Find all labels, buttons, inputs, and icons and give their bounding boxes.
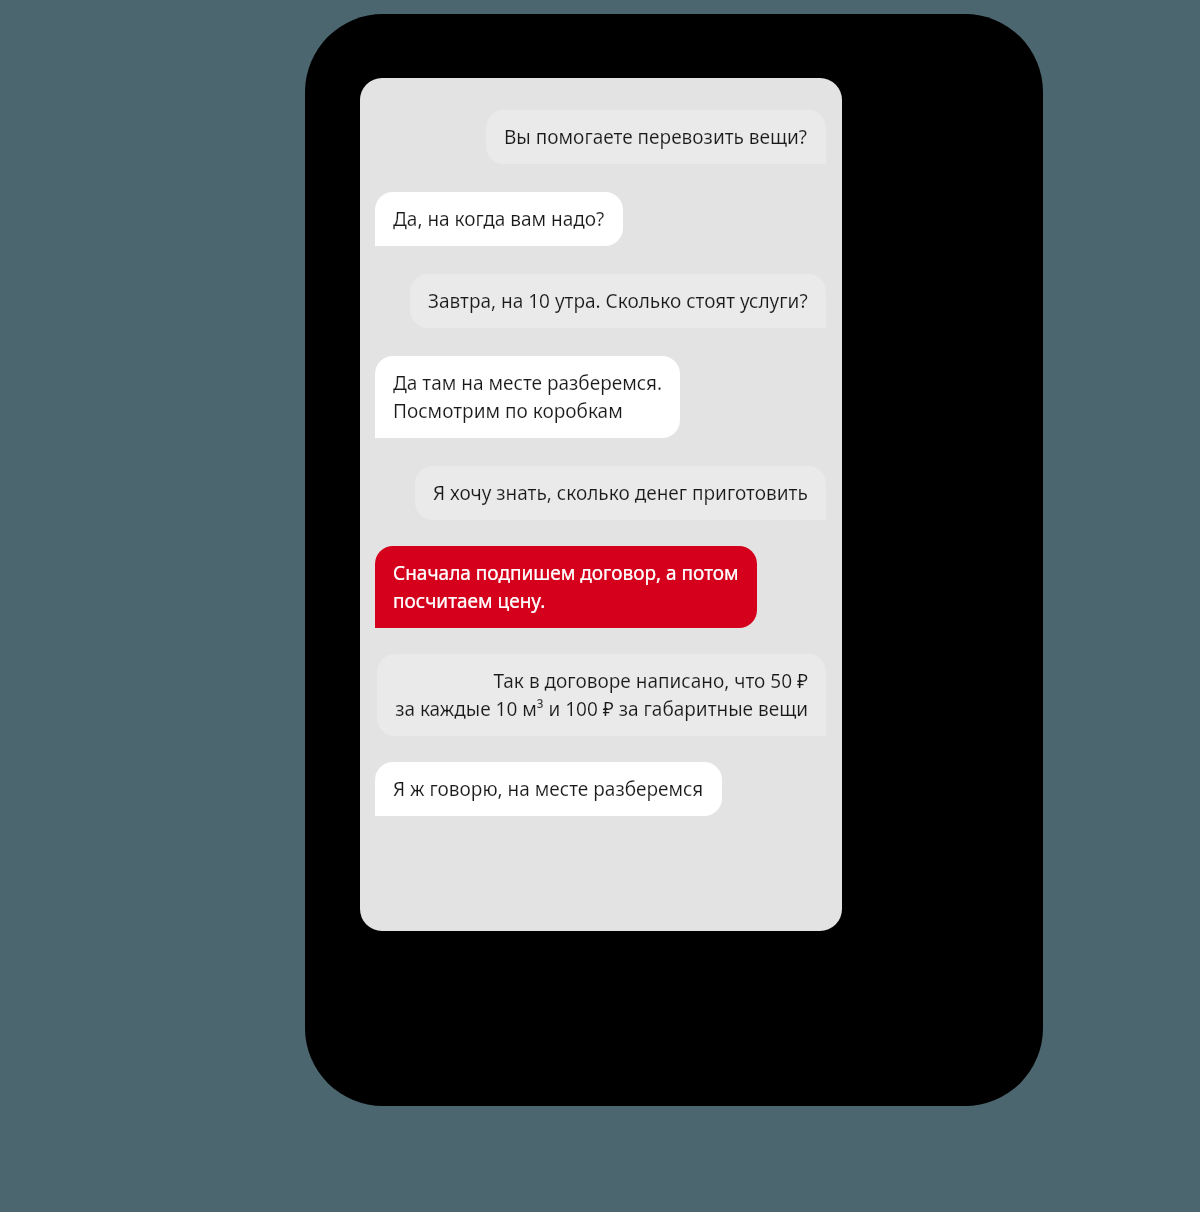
staticText: Да там на месте разберемся. Посмотрим по…	[393, 370, 662, 424]
button[interactable]: Да, на когда вам надо?	[375, 192, 623, 246]
button[interactable]: Сначала подпишем договор, а потом посчит…	[375, 546, 757, 628]
button[interactable]: Вы помогаете перевозить вещи?	[486, 110, 826, 164]
staticText: Сначала подпишем договор, а потом посчит…	[393, 560, 739, 614]
staticText: Я хочу знать, сколько денег приготовить	[433, 480, 808, 506]
button[interactable]: Так в договоре написано, что 50 ₽ за каж…	[377, 654, 826, 736]
button[interactable]: Я ж говорю, на месте разберемся	[375, 762, 722, 816]
staticText: Я ж говорю, на месте разберемся	[393, 776, 704, 802]
staticText: Завтра, на 10 утра. Сколько стоят услуги…	[428, 288, 808, 314]
button[interactable]: Да там на месте разберемся. Посмотрим по…	[375, 356, 680, 438]
staticText: Вы помогаете перевозить вещи?	[504, 124, 808, 150]
staticText: Да, на когда вам надо?	[393, 206, 605, 232]
staticText: Так в договоре написано, что 50 ₽ за каж…	[395, 668, 808, 722]
button[interactable]: Я хочу знать, сколько денег приготовить	[415, 466, 826, 520]
button[interactable]: Завтра, на 10 утра. Сколько стоят услуги…	[410, 274, 826, 328]
